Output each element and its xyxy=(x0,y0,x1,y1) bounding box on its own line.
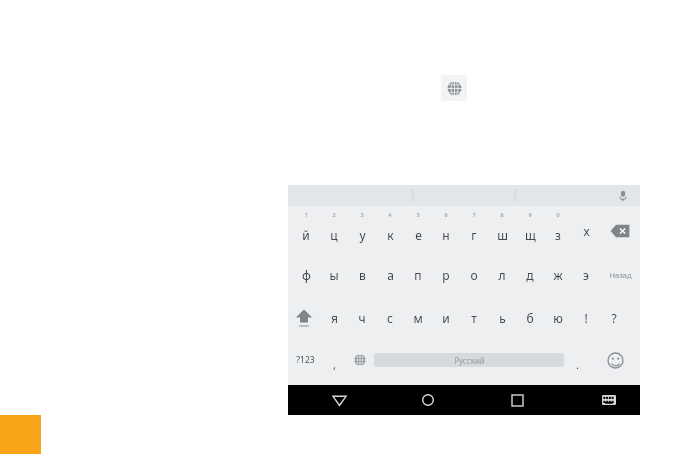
staticText: щ xyxy=(525,227,536,243)
button[interactable]: ?123 xyxy=(288,341,322,379)
staticText: ?123 xyxy=(296,354,315,366)
button[interactable]: с xyxy=(376,298,404,338)
staticText: , xyxy=(333,357,336,372)
staticText: Русский xyxy=(454,355,485,366)
staticText: х xyxy=(583,223,590,239)
staticText: б xyxy=(526,310,534,326)
button[interactable]: э xyxy=(572,255,600,295)
button[interactable]: Backspace xyxy=(600,210,640,252)
staticText: ю xyxy=(553,310,563,326)
button[interactable]: ю xyxy=(544,298,572,338)
staticText: 2 xyxy=(332,211,336,218)
button[interactable]: Voice input xyxy=(614,187,632,205)
staticText: п xyxy=(414,267,422,283)
staticText: ь xyxy=(499,310,506,326)
staticText: э xyxy=(583,267,589,283)
button[interactable]: 3 xyxy=(348,210,376,252)
staticText: д xyxy=(526,267,534,283)
button[interactable]: ь xyxy=(488,298,516,338)
staticText: 1 xyxy=(304,211,308,218)
staticText: а xyxy=(387,267,394,283)
staticText: ! xyxy=(584,310,588,326)
button[interactable]: я xyxy=(320,298,348,338)
staticText: Назад xyxy=(609,270,632,280)
button[interactable]: Shift xyxy=(288,298,320,338)
staticText: 0 xyxy=(556,211,560,218)
button[interactable]: Switch keyboard xyxy=(596,387,622,413)
staticText: ? xyxy=(611,310,617,326)
button[interactable]: Emoji xyxy=(590,341,640,379)
button[interactable]: и xyxy=(432,298,460,338)
staticText: з xyxy=(555,227,561,243)
staticText: н xyxy=(442,227,450,243)
staticText: й xyxy=(302,227,310,243)
button[interactable]: 1 xyxy=(292,210,320,252)
button[interactable]: . xyxy=(564,341,590,379)
button[interactable]: 9 xyxy=(516,210,544,252)
staticText: 5 xyxy=(416,211,420,218)
staticText: о xyxy=(470,267,478,283)
staticText: 4 xyxy=(388,211,392,218)
button[interactable]: ! xyxy=(572,298,600,338)
button[interactable]: ж xyxy=(544,255,572,295)
button[interactable]: 2 xyxy=(320,210,348,252)
button[interactable]: р xyxy=(432,255,460,295)
button[interactable]: д xyxy=(516,255,544,295)
staticText: 6 xyxy=(444,211,448,218)
staticText: е xyxy=(415,227,422,243)
button[interactable]: 4 xyxy=(376,210,404,252)
button[interactable]: Change language xyxy=(441,75,467,101)
staticText: 7 xyxy=(472,211,476,218)
staticText: г xyxy=(471,227,477,243)
button[interactable]: ? xyxy=(600,298,628,338)
button[interactable]: л xyxy=(488,255,516,295)
button[interactable]: 8 xyxy=(488,210,516,252)
button[interactable]: Home xyxy=(415,387,441,413)
staticText: ц xyxy=(330,227,338,243)
staticText: ш xyxy=(497,227,508,243)
button[interactable]: Назад xyxy=(600,255,640,295)
staticText: 3 xyxy=(360,211,364,218)
staticText: 8 xyxy=(500,211,504,218)
staticText: т xyxy=(471,310,477,326)
button[interactable]: ч xyxy=(348,298,376,338)
staticText: . xyxy=(576,357,579,372)
button[interactable]: б xyxy=(516,298,544,338)
button[interactable]: о xyxy=(460,255,488,295)
button[interactable]: ф xyxy=(292,255,320,295)
button[interactable]: 6 xyxy=(432,210,460,252)
button[interactable]: т xyxy=(460,298,488,338)
staticText: ч xyxy=(358,310,366,326)
staticText: 9 xyxy=(528,211,532,218)
staticText: и xyxy=(442,310,450,326)
button[interactable]: Back xyxy=(326,387,352,413)
staticText: у xyxy=(359,227,366,243)
button[interactable]: 0 xyxy=(544,210,572,252)
button[interactable]: , xyxy=(322,341,346,379)
button[interactable]: 7 xyxy=(460,210,488,252)
staticText: к xyxy=(387,227,394,243)
staticText: с xyxy=(387,310,393,326)
staticText: ы xyxy=(329,267,339,283)
button[interactable]: 5 xyxy=(404,210,432,252)
button[interactable]: х xyxy=(572,210,600,252)
staticText: ф xyxy=(302,267,311,283)
button[interactable]: Русский xyxy=(374,353,564,367)
button[interactable]: в xyxy=(348,255,376,295)
staticText: ж xyxy=(553,267,563,283)
button[interactable]: Change language xyxy=(346,341,374,379)
button[interactable]: ы xyxy=(320,255,348,295)
staticText: л xyxy=(498,267,506,283)
staticText: м xyxy=(413,310,423,326)
staticText: в xyxy=(359,267,366,283)
button[interactable]: Recent apps xyxy=(504,387,530,413)
button[interactable]: м xyxy=(404,298,432,338)
staticText: я xyxy=(331,310,338,326)
button[interactable]: а xyxy=(376,255,404,295)
staticText: р xyxy=(442,267,450,283)
button[interactable]: п xyxy=(404,255,432,295)
